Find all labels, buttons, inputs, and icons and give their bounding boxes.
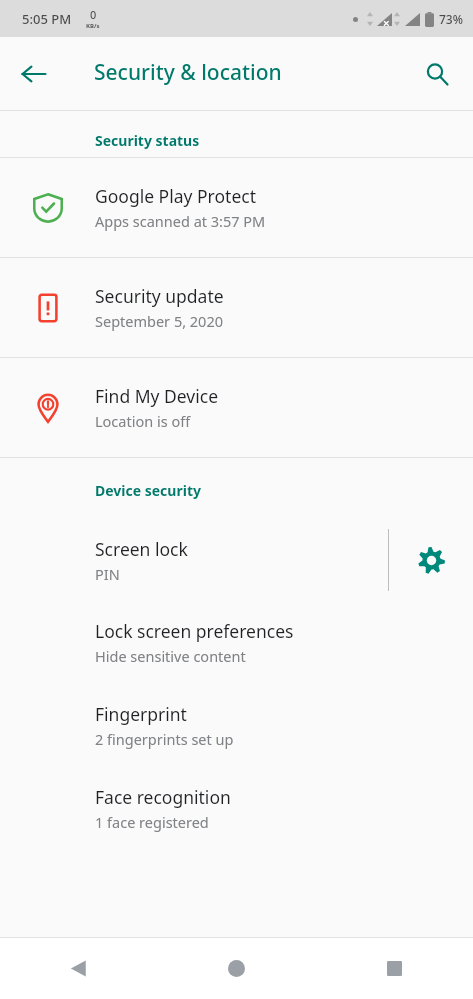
staticText: Security & location (94, 58, 282, 87)
staticText: 1 face registered (95, 812, 209, 832)
button[interactable]: Google Play Protect (0, 158, 473, 257)
staticText: Hide sensitive content (95, 646, 246, 666)
staticText: Security status (95, 131, 200, 150)
button[interactable]: Screen lock settings (389, 521, 473, 599)
button[interactable]: Home (157, 938, 315, 999)
button[interactable]: Security update (0, 258, 473, 357)
staticText: Fingerprint (95, 702, 187, 726)
button[interactable]: Recent apps (315, 938, 473, 999)
button[interactable]: Find My Device (0, 358, 473, 457)
staticText: Apps scanned at 3:57 PM (95, 211, 266, 231)
staticText: Screen lock (95, 537, 188, 561)
staticText: Face recognition (95, 785, 231, 809)
staticText: Security update (95, 284, 224, 308)
staticText: Google Play Protect (95, 184, 256, 208)
button[interactable]: Face recognition (0, 781, 473, 836)
staticText: KB/s (86, 22, 100, 30)
button[interactable]: Screen lock (0, 537, 388, 584)
staticText: 5:05 PM (22, 10, 72, 28)
staticText: 0 (90, 7, 97, 22)
staticText: PIN (95, 564, 120, 584)
staticText: Location is off (95, 411, 191, 431)
staticText: 2 fingerprints set up (95, 729, 234, 749)
button[interactable]: Back (0, 938, 157, 999)
button[interactable]: Back (10, 50, 58, 98)
button[interactable]: Fingerprint (0, 698, 473, 753)
staticText: Device security (95, 481, 201, 500)
staticText: Lock screen preferences (95, 619, 294, 643)
staticText: Find My Device (95, 384, 219, 408)
button[interactable]: Lock screen preferences (0, 615, 473, 670)
button[interactable]: Search (413, 50, 461, 98)
staticText: 73% (439, 11, 463, 27)
staticText: September 5, 2020 (95, 311, 224, 331)
